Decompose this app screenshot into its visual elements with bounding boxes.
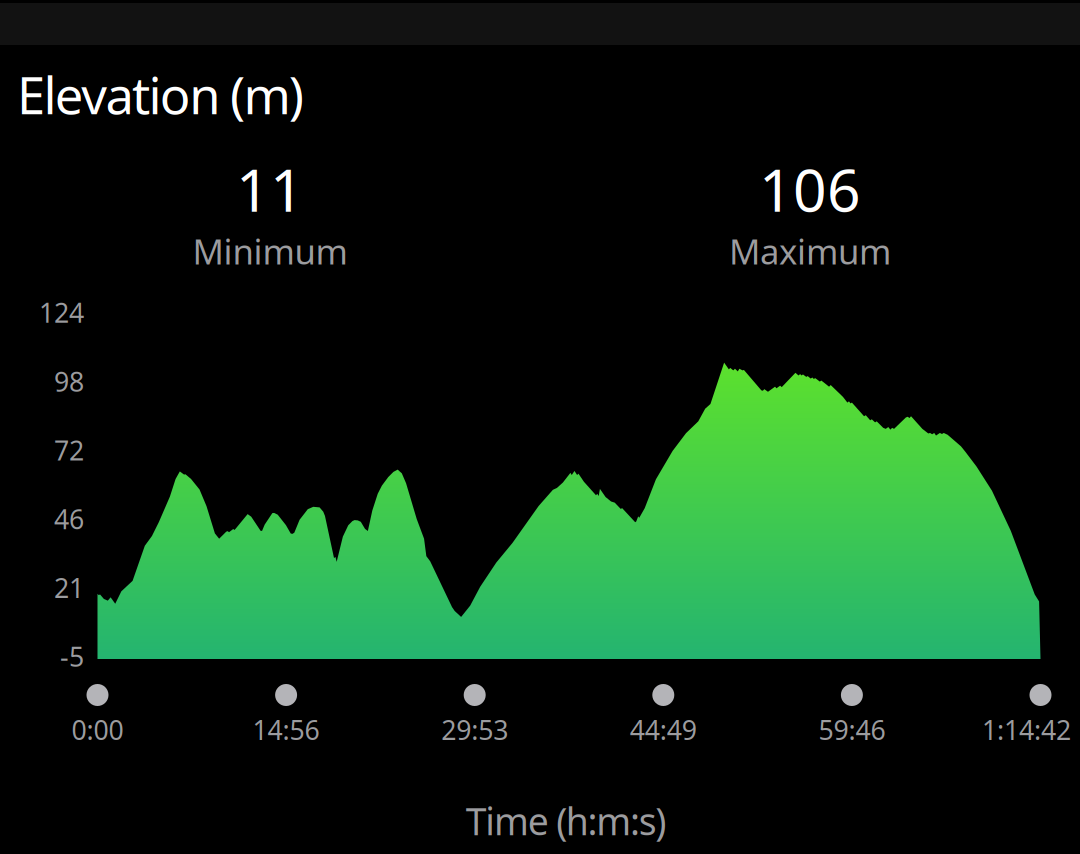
staticText: 1:14:42 — [982, 712, 1071, 747]
staticText: 0:00 — [71, 712, 123, 747]
staticText: Maximum — [729, 228, 891, 274]
staticText: -5 — [60, 639, 84, 674]
staticText: Time (h:m:s) — [466, 796, 666, 846]
staticText: Minimum — [192, 228, 347, 274]
staticText: 29:53 — [441, 712, 508, 747]
staticText: 72 — [54, 432, 84, 468]
staticText: 11 — [236, 150, 304, 228]
staticText: 106 — [759, 150, 861, 228]
staticText: 98 — [54, 364, 84, 399]
staticText: 21 — [54, 570, 84, 605]
button[interactable]: Elevation chart — [97, 315, 1040, 659]
staticText: 44:49 — [630, 712, 697, 747]
staticText: 59:46 — [818, 712, 885, 747]
staticText: Elevation (m) — [17, 61, 304, 128]
staticText: 46 — [54, 501, 84, 537]
staticText: 124 — [39, 295, 84, 330]
staticText: 14:56 — [253, 712, 320, 747]
